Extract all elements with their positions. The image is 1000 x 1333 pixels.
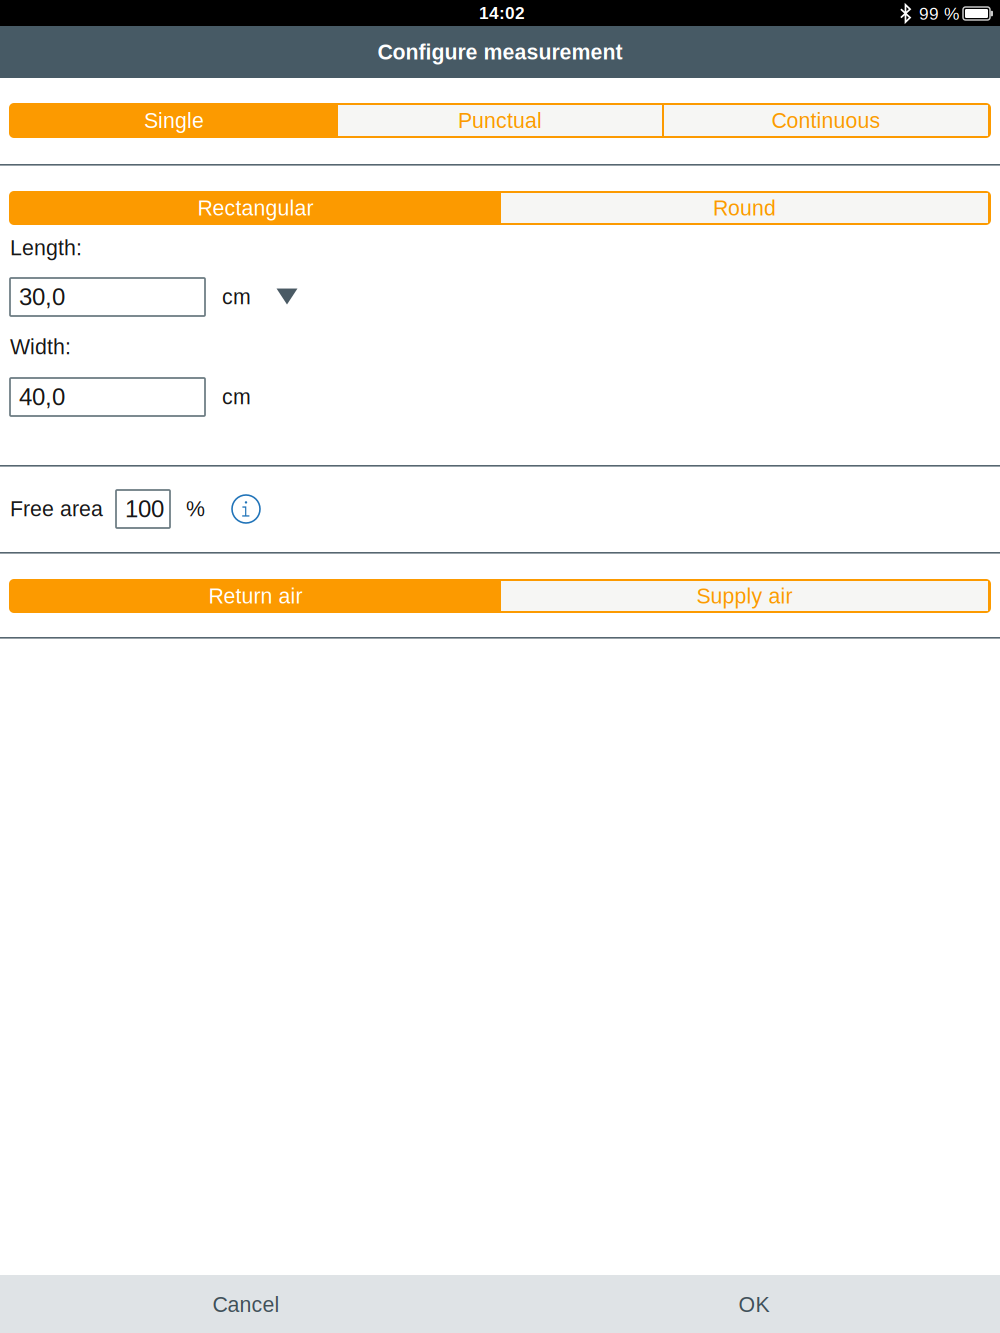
staticText: 14:02 [479, 3, 525, 23]
staticText: 100 [125, 496, 164, 522]
staticText: Punctual [458, 109, 542, 132]
staticText: % [186, 497, 205, 521]
staticText: Continuous [771, 109, 880, 132]
button[interactable]: Info about free area [0, 0, 42, 42]
button[interactable]: OK [0, 0, 300, 59]
staticText: Free area [10, 497, 103, 521]
staticText: Length: [10, 236, 82, 260]
button[interactable]: Continuous [9, 103, 333, 134]
button[interactable]: Supply air [9, 579, 496, 609]
staticText: 40,0 [19, 384, 65, 410]
staticText: 99 % [919, 4, 959, 23]
staticText: Configure measurement [377, 40, 622, 64]
staticText: Cancel [212, 1293, 279, 1316]
staticText: Supply air [696, 584, 792, 608]
button[interactable]: Single [9, 103, 335, 134]
staticText: cm [222, 285, 251, 309]
button[interactable]: Rectangular [9, 191, 498, 221]
button[interactable]: Return air [9, 579, 498, 609]
staticText: Return air [208, 584, 302, 608]
button[interactable]: Cancel [0, 0, 300, 59]
staticText: 30,0 [19, 284, 65, 310]
staticText: Width: [10, 335, 71, 359]
button[interactable]: Punctual [9, 103, 333, 134]
button[interactable]: Round [9, 191, 496, 221]
button[interactable]: Change unit [0, 0, 50, 39]
staticText: Single [144, 109, 204, 132]
button[interactable]: Width value [0, 0, 195, 38]
button[interactable]: Length value [0, 0, 195, 38]
staticText: Round [713, 196, 776, 220]
staticText: cm [222, 385, 251, 409]
staticText: Rectangular [197, 196, 313, 220]
button[interactable]: Free area percentage [0, 0, 54, 38]
staticText: OK [738, 1293, 769, 1316]
